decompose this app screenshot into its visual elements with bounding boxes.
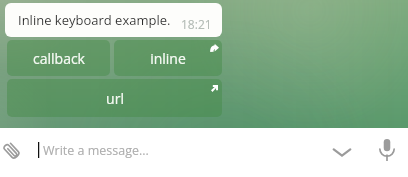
staticText: Inline keyboard example. <box>18 11 171 29</box>
button[interactable]: url <box>7 79 222 117</box>
button[interactable]: inline <box>114 40 222 76</box>
staticText: url <box>106 89 124 108</box>
staticText: callback <box>33 49 85 68</box>
button[interactable]: Attach file <box>0 132 23 168</box>
button[interactable]: Open emoji keyboard <box>329 134 355 170</box>
button[interactable]: Inline keyboard example. <box>5 3 222 37</box>
button[interactable]: Record voice message <box>373 130 401 170</box>
staticText: Write a message... <box>43 142 149 159</box>
button[interactable]: callback <box>7 40 110 76</box>
staticText: inline <box>150 49 186 68</box>
staticText: 18:21 <box>181 16 212 32</box>
